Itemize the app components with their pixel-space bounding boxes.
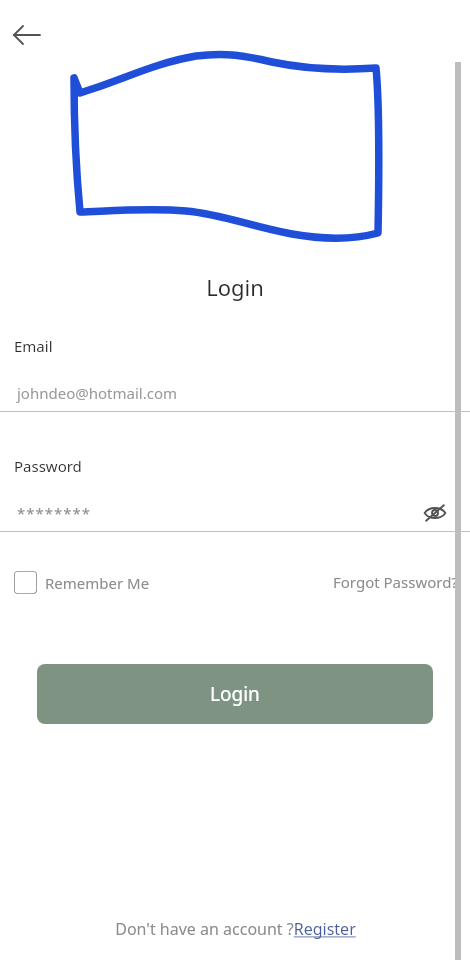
staticText: Don't have an account ?Register bbox=[115, 918, 356, 940]
button[interactable]: Remember Me bbox=[14, 571, 150, 594]
staticText: Forgot Password? bbox=[333, 572, 458, 592]
button[interactable]: Forgot Password? bbox=[333, 572, 458, 592]
staticText: johndeo@hotmail.com bbox=[17, 383, 177, 403]
button[interactable]: Login bbox=[37, 664, 433, 724]
button[interactable]: ******** bbox=[17, 503, 92, 523]
button[interactable]: Toggle password visibility bbox=[418, 496, 452, 530]
staticText: Password bbox=[14, 456, 82, 476]
staticText: Remember Me bbox=[45, 573, 150, 593]
button[interactable]: Back bbox=[6, 14, 48, 56]
button[interactable]: johndeo@hotmail.com bbox=[0, 375, 470, 411]
staticText: Email bbox=[14, 336, 53, 356]
staticText: Login bbox=[210, 681, 260, 707]
button[interactable]: Don't have an account ?Register bbox=[0, 906, 470, 952]
staticText: Login bbox=[0, 272, 470, 302]
